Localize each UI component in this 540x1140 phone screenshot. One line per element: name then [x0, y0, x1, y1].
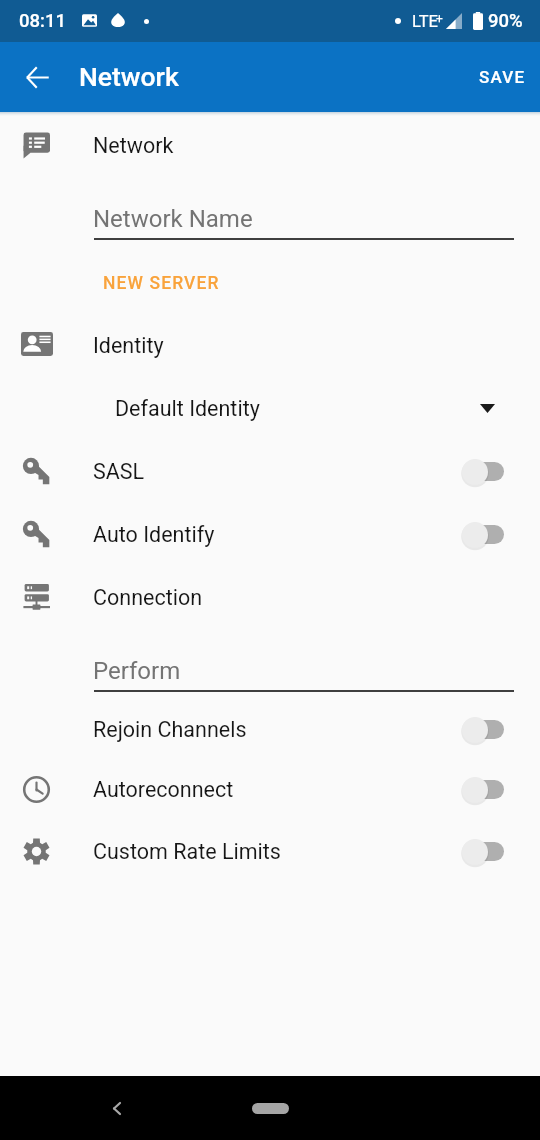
button[interactable]: Custom Rate Limits toggle, off — [452, 829, 512, 875]
button[interactable]: Perform — [0, 643, 540, 699]
staticText: NEW SERVER — [103, 273, 220, 294]
staticText: 08:11 — [19, 10, 66, 32]
button[interactable]: Autoreconnect toggle, off — [452, 767, 512, 813]
staticText: Network Name — [93, 205, 253, 233]
staticText: SASL — [93, 459, 145, 484]
staticText: Rejoin Channels — [93, 717, 247, 742]
button[interactable]: Connection — [0, 566, 540, 629]
button[interactable]: Rejoin Channels toggle, off — [452, 707, 512, 753]
button[interactable]: Auto Identify toggle, off — [452, 512, 512, 558]
staticText: Autoreconnect — [93, 777, 234, 802]
staticText: SAVE — [479, 67, 526, 87]
button[interactable]: SAVE — [468, 55, 537, 99]
button[interactable]: Default Identity — [0, 381, 540, 435]
staticText: Default Identity — [115, 396, 260, 421]
button[interactable]: Rejoin Channels — [0, 698, 540, 761]
staticText: Auto Identify — [93, 522, 215, 547]
button[interactable]: NEW SERVER — [97, 268, 226, 299]
button[interactable]: Identity — [0, 312, 540, 375]
button[interactable]: Custom Rate Limits — [0, 820, 540, 883]
button[interactable]: Autoreconnect — [0, 758, 540, 821]
staticText: Network — [79, 61, 179, 92]
button[interactable]: Auto Identify — [0, 503, 540, 566]
staticText: Custom Rate Limits — [93, 839, 281, 864]
button[interactable]: Back — [96, 1087, 138, 1129]
button[interactable]: SASL — [0, 440, 540, 503]
staticText: Identity — [93, 333, 164, 358]
button[interactable]: Network Name — [0, 191, 540, 247]
button[interactable]: Navigate up — [13, 53, 61, 101]
staticText: Connection — [93, 585, 203, 610]
button[interactable]: Home — [240, 1092, 300, 1124]
button[interactable]: SASL toggle, off — [452, 449, 512, 495]
staticText: + — [436, 12, 443, 26]
staticText: LTE — [412, 12, 438, 31]
staticText: 90% — [488, 10, 523, 32]
button[interactable]: Network — [0, 114, 540, 177]
staticText: Perform — [93, 657, 181, 685]
staticText: Network — [93, 133, 174, 158]
